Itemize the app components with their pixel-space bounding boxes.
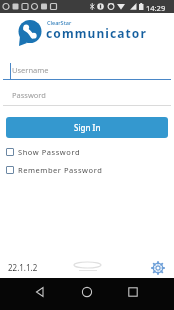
button[interactable]: Show Password (6, 146, 81, 158)
staticText: communicator (46, 25, 147, 41)
staticText: 22.1.1.2 (8, 262, 38, 273)
staticText: ClearStar (47, 19, 72, 26)
staticText: Remember Password (18, 165, 103, 175)
button[interactable] (149, 259, 167, 277)
button[interactable] (30, 282, 50, 302)
staticText: 14:29 (146, 3, 166, 13)
button[interactable]: Remember Password (6, 164, 103, 176)
staticText: Show Password (18, 147, 81, 157)
button[interactable] (123, 282, 143, 302)
staticText: Password (12, 90, 46, 100)
button[interactable]: Sign In (6, 117, 168, 138)
button[interactable] (77, 282, 97, 302)
staticText: Sign In (74, 122, 101, 133)
button[interactable]: Password (0, 84, 174, 108)
button[interactable]: Username (0, 58, 174, 82)
staticText: Username (12, 65, 49, 75)
